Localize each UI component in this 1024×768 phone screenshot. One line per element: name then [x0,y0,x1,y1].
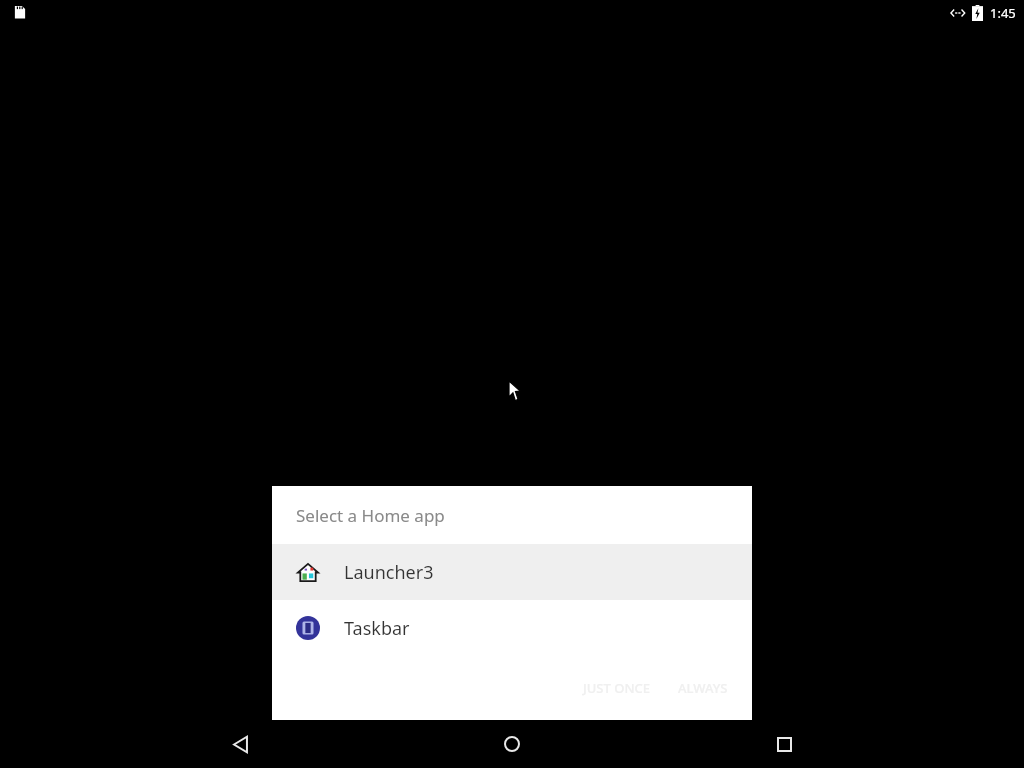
staticText: JUST ONCE [583,679,650,697]
button[interactable]: Launcher3 [272,544,752,600]
staticText: Launcher3 [344,560,434,585]
staticText: Taskbar [344,616,410,641]
staticText: 1:45 [990,4,1016,22]
button[interactable]: Taskbar [272,600,752,656]
staticText: Select a Home app [296,504,445,527]
button[interactable]: Home [480,720,544,768]
button[interactable]: Back [208,720,272,768]
button[interactable]: JUST ONCE [573,671,660,705]
staticText: ALWAYS [678,679,728,697]
button[interactable]: ALWAYS [668,671,738,705]
button[interactable]: Recent apps [752,720,816,768]
other: SD card [12,4,28,20]
